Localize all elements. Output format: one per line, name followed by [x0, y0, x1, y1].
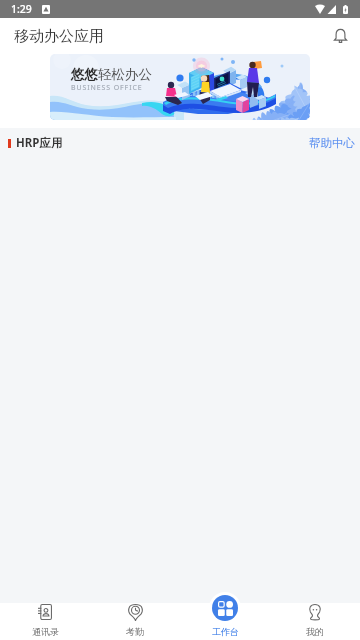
button[interactable]: 考勤	[90, 593, 180, 640]
staticText: 移动办公应用	[14, 27, 104, 46]
button[interactable]: 帮助中心	[309, 136, 355, 150]
staticText: 1:29	[11, 2, 32, 16]
staticText: 帮助中心	[309, 136, 355, 150]
staticText: BUSINESS OFFICE	[71, 83, 143, 93]
staticText: HRP应用	[16, 135, 63, 151]
button[interactable]: 我的	[270, 593, 360, 640]
staticText: 悠悠	[71, 66, 98, 83]
staticText: 我的	[306, 626, 324, 637]
button[interactable]: 悠悠	[50, 54, 310, 120]
staticText: 工作台	[212, 626, 239, 637]
staticText: 考勤	[126, 626, 144, 637]
staticText: 通讯录	[32, 626, 59, 637]
button[interactable]: 工作台	[180, 593, 270, 640]
staticText: 轻松办公	[98, 66, 152, 83]
button[interactable]: Notifications	[327, 23, 353, 49]
button[interactable]: 通讯录	[0, 593, 90, 640]
